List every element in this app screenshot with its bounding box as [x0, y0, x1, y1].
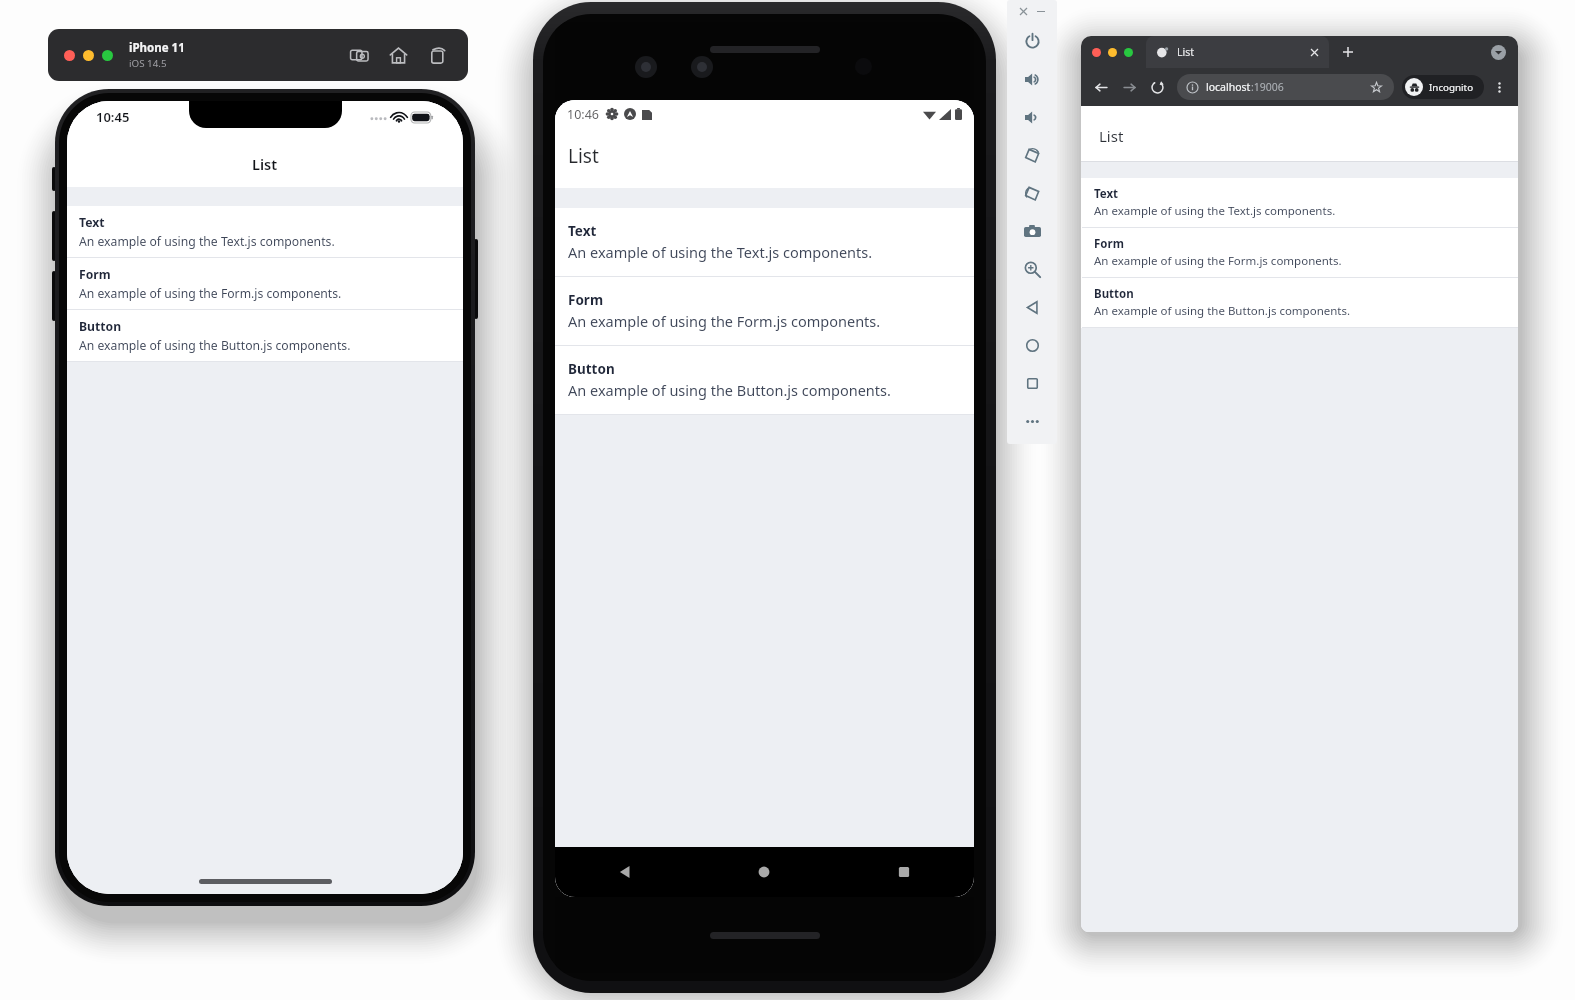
staticText: Button [79, 318, 122, 335]
button[interactable]: Recents [834, 847, 974, 897]
button[interactable]: Take screenshot [1007, 212, 1057, 250]
staticText: 10:45 [96, 108, 130, 126]
button[interactable]: Rotate left [1007, 136, 1057, 174]
button[interactable]: Button [555, 346, 974, 414]
button[interactable]: Volume up [1007, 60, 1057, 98]
button[interactable]: Overview [1007, 364, 1057, 402]
staticText: Form [1094, 236, 1124, 252]
staticText: An example of using the Button.js compon… [79, 337, 351, 354]
button[interactable]: Minimize [1034, 4, 1048, 18]
button[interactable]: Form [67, 258, 463, 309]
button[interactable]: Power [1007, 22, 1057, 60]
staticText: Form [79, 266, 111, 283]
button[interactable]: Close tab [1307, 45, 1321, 59]
staticText: An example of using the Form.js componen… [1094, 253, 1342, 269]
staticText: List [568, 143, 599, 169]
staticText: Button [1094, 286, 1134, 302]
staticText: List [252, 154, 278, 174]
button[interactable]: Forward [1119, 77, 1140, 98]
staticText: An example of using the Text.js componen… [1094, 203, 1336, 219]
button[interactable]: Form [555, 277, 974, 345]
button[interactable]: Home [1007, 326, 1057, 364]
staticText: Text [79, 214, 105, 231]
button[interactable]: Back [555, 847, 694, 897]
button[interactable]: New tab [1339, 43, 1357, 61]
button[interactable]: Back [1091, 77, 1112, 98]
staticText: An example of using the Button.js compon… [1094, 303, 1351, 319]
button[interactable]: List [1146, 36, 1329, 68]
staticText: Text [568, 222, 597, 240]
button[interactable]: Text [67, 206, 463, 257]
staticText: List [1099, 126, 1124, 146]
button[interactable]: Rotate right [1007, 174, 1057, 212]
staticText: Button [568, 360, 615, 378]
button[interactable]: Form [1082, 228, 1518, 277]
button[interactable]: Bookmark [1369, 80, 1384, 95]
staticText: List [1177, 45, 1195, 59]
staticText: An example of using the Button.js compon… [568, 380, 891, 400]
button[interactable]: Text [1082, 178, 1518, 227]
button[interactable]: Button [67, 310, 463, 361]
button[interactable]: Incognito [1402, 75, 1484, 99]
staticText: :19006 [1251, 80, 1284, 94]
button[interactable]: Volume down [1007, 98, 1057, 136]
staticText: iPhone 11 [129, 40, 185, 56]
staticText: An example of using the Form.js componen… [79, 285, 342, 302]
button[interactable]: localhost [1177, 74, 1394, 100]
button[interactable]: Button [1082, 278, 1518, 327]
button[interactable]: Back [1007, 288, 1057, 326]
staticText: Text [1094, 186, 1119, 202]
staticText: iOS 14.5 [129, 57, 167, 70]
button[interactable]: Close [1016, 4, 1030, 18]
staticText: An example of using the Text.js componen… [79, 233, 335, 250]
staticText: localhost [1206, 80, 1251, 94]
button[interactable]: Chrome menu [1490, 78, 1508, 96]
staticText: 10:46 [567, 106, 599, 123]
button[interactable]: Reload [1147, 77, 1168, 98]
staticText: Form [568, 291, 604, 309]
button[interactable]: Text [555, 208, 974, 276]
staticText: Incognito [1429, 81, 1474, 94]
button[interactable]: Home [694, 847, 834, 897]
button[interactable]: Rotate [425, 43, 450, 68]
button[interactable]: Zoom [1007, 250, 1057, 288]
button[interactable]: Screenshot [347, 43, 372, 68]
button[interactable]: More [1007, 402, 1057, 440]
staticText: An example of using the Form.js componen… [568, 311, 881, 331]
staticText: An example of using the Text.js componen… [568, 242, 873, 262]
button[interactable]: Home [386, 43, 411, 68]
button[interactable]: Tab search [1491, 45, 1506, 60]
